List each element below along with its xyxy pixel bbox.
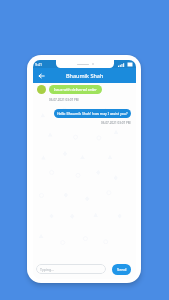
staticText: Issue with delivered order (54, 87, 97, 92)
button[interactable]: Send (112, 264, 131, 275)
button[interactable]: Typing... (36, 264, 106, 274)
staticText: Hello Bhaumik Shah! how may I assist you… (57, 111, 128, 116)
staticText: 06-07-2021 03:07 PM (101, 121, 131, 125)
staticText: Send (117, 267, 127, 272)
staticText: Typing... (40, 267, 54, 272)
staticText: Bhaumik Shah (66, 72, 104, 79)
staticText: 9:41 (35, 62, 42, 67)
button[interactable]: Back (35, 70, 47, 82)
staticText: 06-07-2021 03:07 PM (49, 98, 79, 102)
